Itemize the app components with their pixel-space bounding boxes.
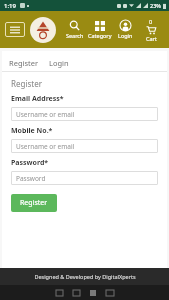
staticText: Register <box>20 198 48 208</box>
button[interactable]: Register <box>11 194 57 212</box>
button[interactable]: 0 <box>138 18 164 42</box>
staticText: 0 <box>149 18 153 25</box>
staticText: Cart <box>146 35 157 42</box>
button[interactable]: Logo <box>30 17 56 43</box>
staticText: 23% <box>150 2 161 9</box>
button[interactable]: Register <box>9 58 49 71</box>
staticText: Search <box>66 32 84 39</box>
staticText: Mobile No.* <box>11 126 53 136</box>
button[interactable]: Username or email <box>11 139 158 153</box>
staticText: Designed & Developed by DigitalXperts <box>34 273 136 280</box>
button[interactable]: Back <box>56 290 63 296</box>
staticText: Login <box>118 32 133 39</box>
button[interactable]: Category <box>87 21 112 39</box>
staticText: Password <box>16 174 46 183</box>
button[interactable]: Password <box>11 171 158 185</box>
staticText: Register <box>11 78 43 89</box>
button[interactable]: Search <box>62 20 87 39</box>
button[interactable]: Username or email <box>11 107 158 121</box>
staticText: Category <box>88 32 112 39</box>
button[interactable]: Login <box>112 20 138 39</box>
staticText: Register <box>9 58 39 68</box>
button[interactable]: Screenshot <box>106 290 114 296</box>
button[interactable]: Login <box>49 58 79 71</box>
staticText: Username or email <box>16 110 75 119</box>
staticText: Password* <box>11 158 49 168</box>
staticText: Email Address* <box>11 94 64 104</box>
staticText: Username or email <box>16 142 75 151</box>
button[interactable]: Home <box>73 290 80 296</box>
staticText: 1:19 <box>4 2 16 10</box>
staticText: Login <box>49 58 69 68</box>
button[interactable]: Menu <box>5 22 25 37</box>
